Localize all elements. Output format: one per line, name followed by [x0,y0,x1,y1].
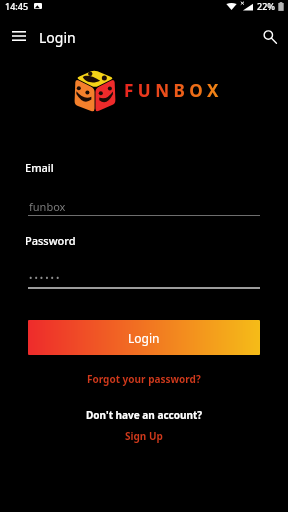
staticText: funbox [29,199,66,214]
button[interactable]: Sign Up [125,429,163,443]
button[interactable]: Forgot your password? [87,372,201,386]
staticText: FUNBOX [124,79,223,102]
staticText: Sign Up [125,429,163,443]
staticText: Don't have an account? [86,408,203,422]
staticText: 22% [257,0,275,12]
staticText: 14:45 [5,0,29,12]
staticText: Forgot your password? [87,372,201,386]
button[interactable]: Login [28,320,260,355]
staticText: Email [25,160,54,175]
staticText: •••••• [29,271,62,283]
staticText: Password [25,233,76,248]
button[interactable]: Search [256,23,284,51]
staticText: Login [128,330,160,346]
staticText: Login [39,28,76,47]
button[interactable]: Open navigation menu [5,22,33,50]
